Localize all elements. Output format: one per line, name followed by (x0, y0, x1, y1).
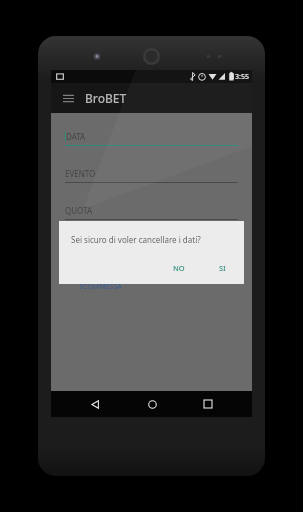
button[interactable]: Home (139, 391, 165, 417)
button[interactable]: QUOTA (65, 205, 238, 220)
button[interactable]: AGGIUNGI SCOMMESSA (75, 271, 126, 293)
button[interactable]: DATA (65, 131, 238, 146)
button[interactable]: SI (211, 260, 234, 276)
staticText: BroBET (85, 90, 127, 106)
staticText: 13:55 (231, 72, 249, 82)
button[interactable]: Recent apps (195, 391, 221, 417)
button[interactable]: NO (165, 260, 193, 276)
staticText: NO (173, 263, 185, 273)
staticText: AGGIUNGI SCOMMESSA (79, 273, 122, 291)
staticText: QUOTA (65, 205, 93, 216)
staticText: SI (219, 263, 226, 273)
staticText: Sei sicuro di voler cancellare i dati? (71, 234, 201, 245)
button[interactable]: Back (82, 391, 108, 417)
button[interactable]: Open navigation menu (57, 87, 79, 109)
button[interactable]: IMPORTO (65, 242, 238, 257)
staticText: DATA (66, 131, 86, 142)
staticText: EVENTO (65, 168, 96, 179)
button[interactable]: EVENTO (65, 168, 238, 183)
staticText: IMPORTO (65, 242, 102, 253)
